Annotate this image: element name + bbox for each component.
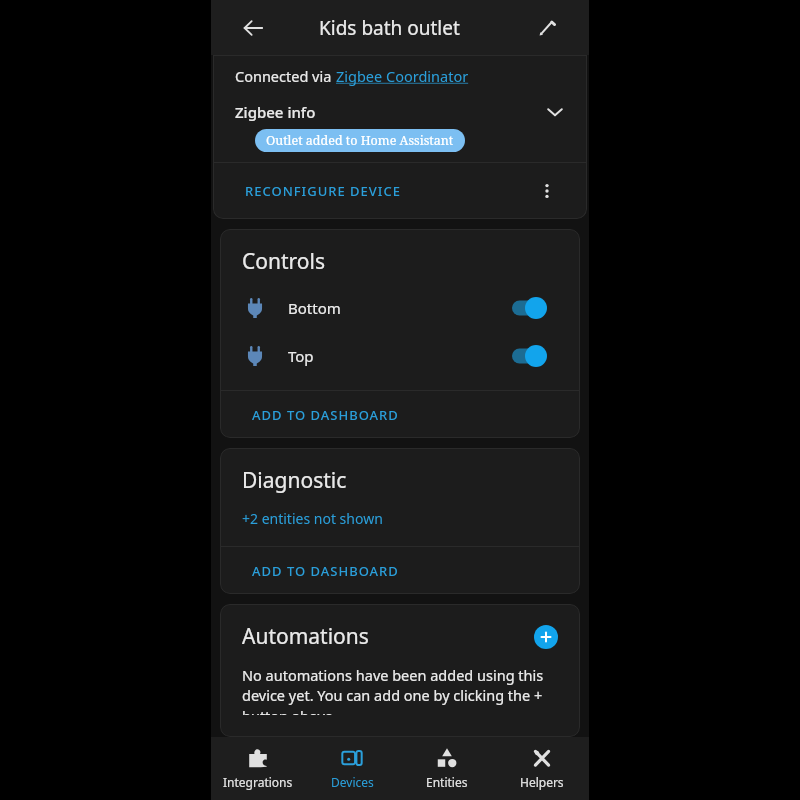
staticText: Outlet added to Home Assistant (266, 132, 454, 149)
staticText: Integrations (223, 774, 293, 790)
button[interactable]: +2 entities not shown (242, 509, 383, 528)
button[interactable]: Integrations (211, 737, 305, 800)
staticText: Bottom (288, 298, 341, 318)
button[interactable]: Helpers (494, 737, 589, 800)
button[interactable]: Bottom (220, 284, 580, 332)
button[interactable]: Entities (399, 737, 494, 800)
button[interactable]: ADD TO DASHBOARD (240, 554, 411, 588)
staticText: Automations (242, 622, 369, 651)
button[interactable]: ADD TO DASHBOARD (240, 398, 411, 432)
staticText: Helpers (520, 774, 564, 790)
staticText: ADD TO DASHBOARD (252, 406, 399, 424)
staticText: Controls (242, 247, 325, 276)
staticText: No automations have been added using thi… (242, 665, 554, 715)
button[interactable]: Edit (527, 8, 567, 48)
button[interactable]: Back (233, 8, 273, 48)
staticText: Top (288, 346, 314, 366)
button[interactable]: More options (529, 173, 565, 209)
button[interactable]: Devices (305, 737, 399, 800)
button[interactable]: Add automation (534, 625, 558, 649)
staticText: Kids bath outlet (319, 15, 460, 41)
staticText: Zigbee Coordinator (336, 66, 469, 86)
button[interactable]: Top (220, 332, 580, 380)
button[interactable]: RECONFIGURE DEVICE (233, 174, 413, 208)
staticText: RECONFIGURE DEVICE (245, 182, 401, 200)
staticText: +2 entities not shown (242, 509, 383, 528)
staticText: Connected via (235, 66, 336, 86)
staticText: Entities (426, 774, 468, 790)
staticText: ADD TO DASHBOARD (252, 562, 399, 580)
button[interactable]: Zigbee Coordinator (336, 66, 469, 86)
button[interactable]: Zigbee info (213, 86, 587, 122)
staticText: Diagnostic (242, 466, 347, 495)
staticText: Zigbee info (235, 102, 316, 122)
staticText: Devices (331, 774, 374, 790)
